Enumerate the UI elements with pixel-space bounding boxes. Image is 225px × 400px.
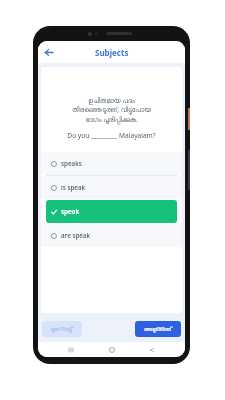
staticText: ഉചിതമായ പദം തിരഞ്ഞെടുത്ത്, വിട്ടുപോയ ഭാഗ… [51, 96, 172, 124]
button[interactable]: അടുത്തത് [135, 321, 181, 337]
staticText: Do you _________ Malayalam? [49, 131, 174, 140]
staticText: speaks [61, 159, 82, 168]
staticText: മുന്നോട്ട് [51, 326, 73, 332]
button[interactable]: Home [105, 343, 119, 357]
button[interactable]: speak [46, 200, 177, 223]
button[interactable]: Recents [64, 343, 78, 357]
button[interactable]: Back [145, 343, 159, 357]
staticText: അടുത്തത് [144, 326, 172, 332]
staticText: speak [61, 207, 80, 216]
button[interactable]: speaks [41, 152, 182, 175]
button[interactable]: മുന്നോട്ട് [42, 321, 82, 337]
staticText: is speak [61, 183, 86, 192]
button[interactable]: are speak [41, 224, 182, 247]
button[interactable]: is speak [41, 176, 182, 199]
button[interactable]: Back [40, 44, 57, 61]
staticText: Subjects [95, 47, 129, 58]
staticText: are speak [61, 231, 91, 240]
